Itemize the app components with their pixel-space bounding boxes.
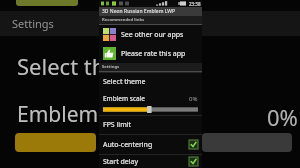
button[interactable]: FPS limit bbox=[99, 116, 202, 134]
staticText: Select th bbox=[17, 51, 106, 81]
staticText: 23:38 bbox=[189, 1, 201, 7]
staticText: Emblem scale bbox=[103, 94, 146, 103]
staticText: Please rate this app bbox=[121, 49, 186, 59]
button[interactable]: See other our apps bbox=[99, 25, 202, 44]
button[interactable]: Auto-centering bbox=[99, 135, 202, 154]
staticText: Auto-centering bbox=[103, 140, 153, 150]
button[interactable]: Start delay bbox=[99, 155, 202, 168]
staticText: Recommended links bbox=[102, 17, 145, 23]
button[interactable]: 3D Neon Russian Emblem LWP bbox=[99, 7, 202, 16]
staticText: 3D Neon Russian Emblem LWP bbox=[102, 8, 176, 15]
staticText: 81% bbox=[178, 1, 186, 6]
staticText: Settings bbox=[12, 16, 54, 31]
button[interactable]: Please rate this app bbox=[99, 44, 202, 63]
staticText: 0% bbox=[267, 102, 298, 132]
staticText: Settings bbox=[102, 64, 120, 70]
staticText: Start delay bbox=[103, 157, 139, 167]
button[interactable]: Emblem scale bbox=[99, 91, 202, 115]
button[interactable]: Start delay bbox=[189, 157, 198, 166]
staticText: Emblem s bbox=[17, 100, 114, 129]
staticText: FPS limit bbox=[103, 120, 132, 130]
staticText: See other our apps bbox=[121, 30, 184, 40]
button[interactable]: Select theme bbox=[99, 73, 202, 91]
button[interactable]: Auto-centering bbox=[189, 140, 198, 149]
staticText: Select theme bbox=[103, 77, 146, 87]
staticText: 0% bbox=[189, 95, 198, 103]
